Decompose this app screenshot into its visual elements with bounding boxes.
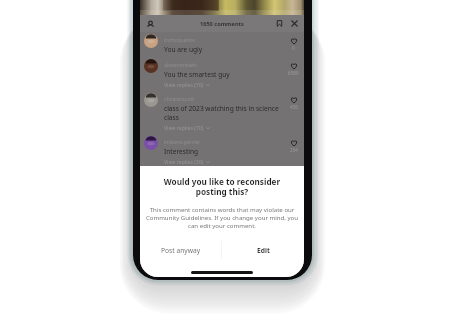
staticText: Interesting	[164, 147, 199, 156]
staticText: View replies (30)	[164, 158, 204, 165]
button[interactable]: indiane.gerrier	[140, 134, 304, 168]
button[interactable]: Post anyway	[140, 240, 221, 260]
staticText: indiane.gerrier	[164, 138, 201, 145]
staticText: Edit	[257, 246, 270, 255]
staticText: akwanimkwls	[164, 61, 197, 68]
staticText: View replies (70)	[164, 124, 204, 131]
button[interactable]: Save	[273, 17, 286, 30]
staticText: 294	[290, 147, 298, 153]
staticText: 1650 comments	[200, 20, 244, 28]
staticText: itsmcqueline	[164, 36, 196, 43]
button[interactable]: chxaterscott	[140, 91, 304, 134]
staticText: 456	[290, 104, 298, 110]
staticText: class of 2023 watching this in science c…	[164, 104, 279, 122]
staticText: This comment contains words that may vio…	[140, 205, 304, 229]
staticText: You are ugly	[164, 45, 203, 54]
staticText: Post anyway	[161, 246, 201, 255]
button[interactable]: akwanimkwls	[140, 57, 304, 91]
button[interactable]: Profile	[143, 17, 157, 31]
staticText: Would you like to reconsider posting thi…	[140, 176, 304, 198]
button[interactable]: Edit	[222, 240, 304, 260]
button[interactable]: itsmcqueline	[140, 32, 304, 57]
staticText: 6589	[288, 70, 299, 76]
staticText: View replies (70)	[164, 81, 204, 88]
staticText: You the smartest guy	[164, 70, 230, 79]
staticText: 0	[292, 45, 295, 51]
staticText: chxaterscott	[164, 95, 195, 102]
button[interactable]: Close	[288, 17, 301, 30]
